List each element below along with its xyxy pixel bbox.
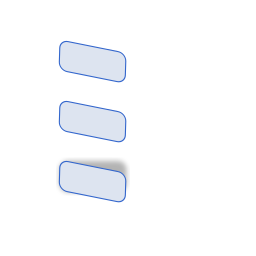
button[interactable] xyxy=(60,160,126,190)
button[interactable] xyxy=(60,100,126,130)
